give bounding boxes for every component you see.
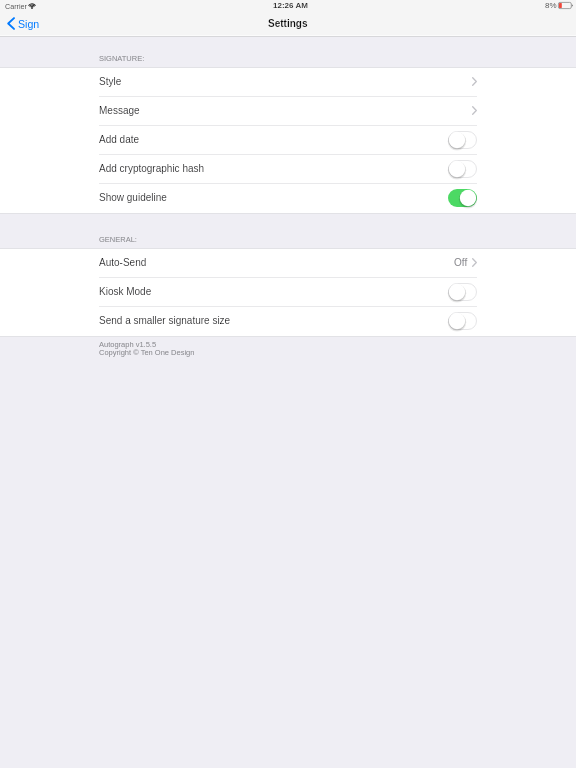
staticText: Kiosk Mode	[99, 286, 152, 297]
staticText: Add date	[99, 134, 140, 145]
button[interactable]: Add cryptographic hash, off	[448, 160, 477, 178]
button[interactable]: Show guideline, on	[448, 189, 477, 207]
button[interactable]: Auto-Send	[0, 249, 576, 278]
staticText: Message	[99, 105, 140, 116]
button[interactable]: Kiosk Mode	[0, 278, 576, 307]
button[interactable]: Style	[0, 68, 576, 97]
staticText: SIGNATURE:	[99, 54, 145, 62]
button[interactable]: Add cryptographic hash	[0, 155, 576, 184]
button[interactable]: Message	[0, 97, 576, 126]
staticText: Carrier	[5, 2, 27, 10]
staticText: Auto-Send	[99, 257, 147, 268]
button[interactable]: Show guideline	[0, 184, 576, 213]
button[interactable]: Send a smaller signature size, off	[448, 312, 477, 330]
staticText: Off	[454, 257, 468, 268]
staticText: Copyright © Ten One Design	[99, 348, 195, 356]
button[interactable]: Back to Sign	[0, 15, 50, 32]
staticText: 12:26 AM	[273, 1, 308, 10]
staticText: Sign	[18, 18, 40, 30]
button[interactable]: Add date	[0, 126, 576, 155]
staticText: Add cryptographic hash	[99, 163, 205, 174]
staticText: Style	[99, 76, 122, 87]
staticText: GENERAL:	[99, 235, 137, 243]
staticText: Show guideline	[99, 192, 167, 203]
staticText: 8%	[545, 1, 557, 10]
button[interactable]: Kiosk Mode, off	[448, 283, 477, 301]
staticText: Settings	[268, 18, 308, 29]
staticText: Send a smaller signature size	[99, 315, 231, 326]
staticText: Autograph v1.5.5	[99, 340, 157, 348]
button[interactable]: Add date, off	[448, 131, 477, 149]
button[interactable]: Send a smaller signature size	[0, 307, 576, 336]
